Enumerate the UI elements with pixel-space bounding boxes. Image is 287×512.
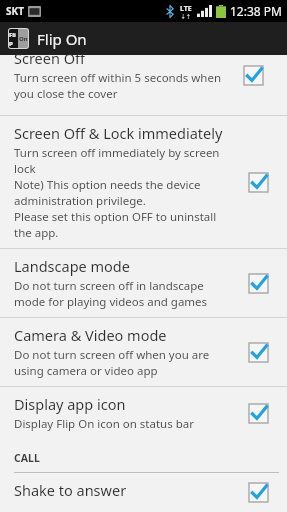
button[interactable]: Toggle setting [249,173,268,192]
button[interactable]: Toggle setting [249,404,268,423]
staticText: using camera or video app [14,363,158,379]
button[interactable]: Shake to answer [0,473,287,512]
staticText: you close the cover [14,86,118,102]
staticText: Display app icon [14,394,126,414]
button[interactable]: Display app icon [0,387,287,439]
button[interactable]: Screen Off & Lock immediately [0,116,287,248]
staticText: Landscape mode [14,256,130,276]
staticText: lock [14,161,36,177]
staticText: Do not turn screen off when you are [14,347,210,363]
button[interactable]: Toggle setting [249,274,268,293]
button[interactable]: Toggle setting [244,66,263,85]
staticText: Please set this option OFF to uninstall [14,209,217,225]
staticText: Screen Off [14,48,86,68]
button[interactable]: Toggle setting [249,483,268,502]
staticText: Flip On [37,29,87,49]
button[interactable]: Landscape mode [0,249,287,317]
staticText: Turn screen off immediately by screen [14,145,220,161]
staticText: SKT [6,4,24,18]
staticText: Display Flip On icon on status bar [14,416,194,432]
staticText: Do not turn screen off in landscape [14,278,204,294]
staticText: 12:38 PM [230,3,282,19]
button[interactable]: Screen Off [0,55,287,115]
staticText: CALL [14,451,40,465]
staticText: On [19,35,28,43]
staticText: LTE [180,4,192,14]
button[interactable]: Toggle setting [249,343,268,362]
staticText: Turn screen off within 5 seconds when [14,70,222,86]
staticText: Camera & Video mode [14,325,167,345]
staticText: Note) This option needs the device [14,177,201,193]
staticText: Screen Off & Lock immediately [14,123,223,143]
staticText: the app. [14,225,59,241]
staticText: administration privilege. [14,193,146,209]
staticText: Flip [9,31,18,47]
button[interactable]: Camera & Video mode [0,318,287,386]
staticText: Shake to answer [14,480,127,500]
staticText: mode for playing videos and games [14,294,208,310]
